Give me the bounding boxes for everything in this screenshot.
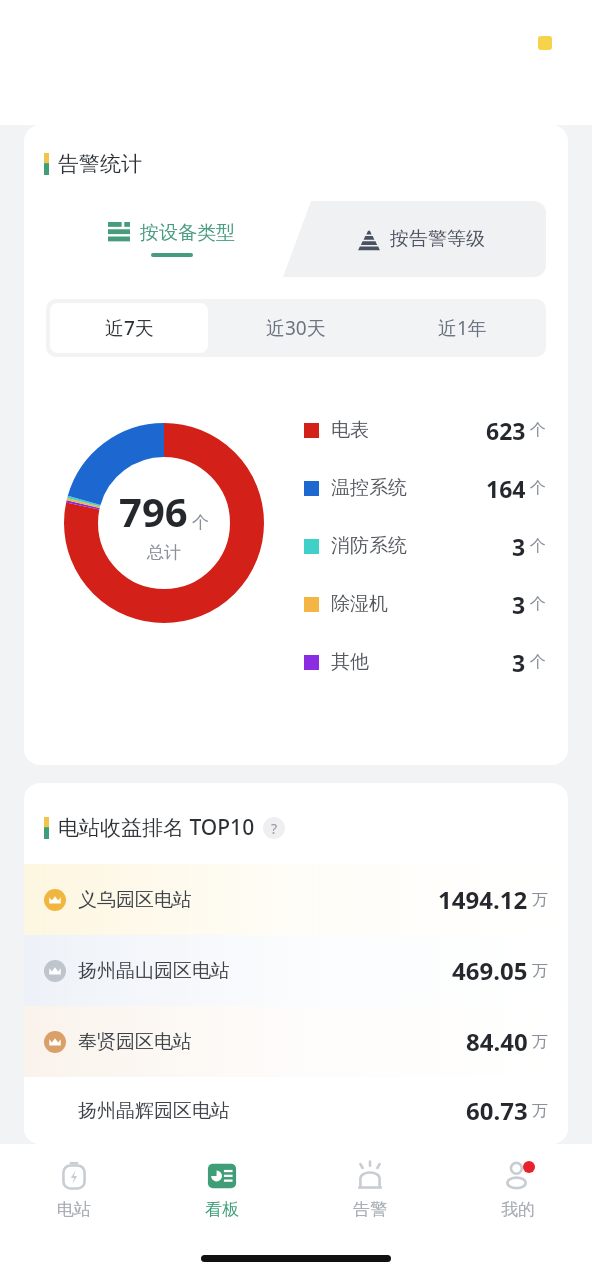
staticText: 告警 bbox=[353, 1199, 387, 1220]
staticText: 60.73 bbox=[466, 1094, 528, 1127]
button[interactable]: 奉贤园区电站 bbox=[24, 1006, 568, 1077]
staticText: 按告警等级 bbox=[390, 227, 485, 251]
other: 我的 bbox=[502, 1160, 534, 1192]
button[interactable]: 义乌园区电站 bbox=[24, 864, 568, 935]
staticText: 796 bbox=[119, 484, 188, 538]
staticText: 扬州晶山园区电站 bbox=[78, 959, 230, 983]
button[interactable]: 电站 bbox=[0, 1144, 148, 1236]
staticText: 个 bbox=[530, 420, 546, 440]
staticText: 万 bbox=[532, 890, 548, 910]
staticText: 电站收益排名 TOP10 bbox=[58, 813, 255, 842]
staticText: 个 bbox=[530, 594, 546, 614]
staticText: 温控系统 bbox=[331, 476, 407, 500]
staticText: 个 bbox=[530, 652, 546, 672]
button[interactable]: 消防系统 bbox=[304, 517, 546, 575]
button[interactable]: 帮助 bbox=[263, 817, 285, 839]
staticText: 扬州晶辉园区电站 bbox=[78, 1099, 230, 1123]
staticText: 近1年 bbox=[438, 315, 487, 341]
staticText: 按设备类型 bbox=[140, 221, 235, 245]
button[interactable]: 电表 bbox=[304, 401, 546, 459]
staticText: 84.40 bbox=[466, 1025, 528, 1058]
button[interactable]: 其他 bbox=[304, 633, 546, 691]
button[interactable]: 按设备类型 bbox=[46, 201, 296, 277]
staticText: ? bbox=[271, 819, 278, 838]
staticText: 469.05 bbox=[452, 954, 528, 987]
staticText: 我的 bbox=[501, 1199, 535, 1220]
staticText: 近7天 bbox=[105, 315, 154, 341]
button[interactable]: 告警 bbox=[296, 1144, 444, 1236]
staticText: 万 bbox=[532, 1101, 548, 1121]
button[interactable]: 扬州晶山园区电站 bbox=[24, 935, 568, 1006]
staticText: 1494.12 bbox=[438, 883, 528, 916]
staticText: 个 bbox=[530, 536, 546, 556]
staticText: 义乌园区电站 bbox=[78, 888, 192, 912]
staticText: 万 bbox=[532, 961, 548, 981]
staticText: 奉贤园区电站 bbox=[78, 1030, 192, 1054]
button[interactable]: 扬州晶辉园区电站 bbox=[24, 1077, 568, 1144]
staticText: 消防系统 bbox=[331, 534, 407, 558]
button[interactable]: 温控系统 bbox=[304, 459, 546, 517]
staticText: 除湿机 bbox=[331, 592, 388, 616]
other: 电站 bbox=[58, 1160, 90, 1192]
staticText: 个 bbox=[530, 478, 546, 498]
staticText: 电表 bbox=[331, 418, 369, 442]
staticText: 看板 bbox=[205, 1199, 239, 1220]
staticText: 3 bbox=[512, 531, 526, 562]
staticText: 总计 bbox=[147, 542, 181, 563]
button[interactable]: 我的 bbox=[444, 1144, 592, 1236]
button[interactable]: 近7天 bbox=[50, 303, 208, 353]
staticText: 万 bbox=[532, 1032, 548, 1052]
other: 看板 bbox=[206, 1160, 238, 1192]
button[interactable]: 近30天 bbox=[216, 303, 375, 353]
staticText: 个 bbox=[192, 512, 209, 533]
button[interactable]: 按告警等级 bbox=[296, 201, 546, 277]
staticText: 3 bbox=[512, 589, 526, 620]
button[interactable]: 除湿机 bbox=[304, 575, 546, 633]
staticText: 近30天 bbox=[266, 315, 326, 341]
other: 告警 bbox=[354, 1160, 386, 1192]
staticText: 3 bbox=[512, 647, 526, 678]
button[interactable]: 看板 bbox=[148, 1144, 296, 1236]
staticText: 164 bbox=[486, 473, 526, 504]
staticText: 电站 bbox=[57, 1199, 91, 1220]
staticText: 623 bbox=[486, 415, 526, 446]
staticText: 告警统计 bbox=[58, 151, 142, 177]
staticText: 其他 bbox=[331, 650, 369, 674]
button[interactable]: 近1年 bbox=[383, 303, 542, 353]
